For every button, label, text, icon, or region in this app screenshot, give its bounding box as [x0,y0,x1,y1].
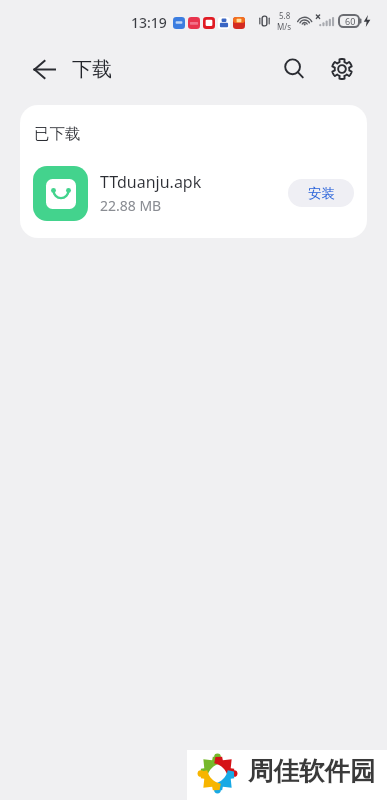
staticText: 安装 [308,185,335,202]
staticText: 22.88 MB [100,196,162,215]
staticText: 已下载 [34,124,81,144]
button[interactable]: 安装 [288,179,354,207]
staticText: M/s [277,21,292,32]
staticText: 13:19 [131,13,167,32]
staticText: 周佳软件园 [248,755,376,787]
staticText: 5.8 [279,10,291,21]
staticText: TTduanju.apk [100,171,202,193]
button[interactable]: Settings [318,46,366,92]
staticText: 下载 [72,57,112,82]
staticText: 60 [345,15,356,27]
button[interactable]: Search [270,46,318,92]
button[interactable]: TTduanju.apk [33,164,354,222]
button[interactable]: Back [24,49,64,89]
